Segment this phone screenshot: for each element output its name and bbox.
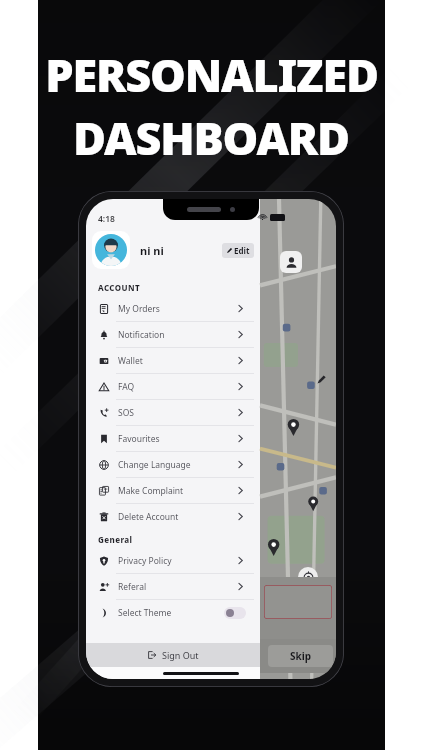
button[interactable]: My Orders: [92, 296, 254, 322]
button[interactable]: Profile marker: [280, 251, 302, 273]
button[interactable]: FAQ: [92, 374, 254, 400]
button[interactable]: Change Language: [92, 452, 254, 478]
button[interactable]: Make Complaint: [92, 478, 254, 504]
button[interactable]: Privacy Policy: [92, 548, 254, 574]
staticText: Change Language: [118, 459, 191, 471]
staticText: Wallet: [118, 355, 143, 367]
button[interactable]: My location: [298, 567, 318, 587]
staticText: Favourites: [118, 433, 160, 445]
staticText: 4:18: [98, 213, 115, 225]
button[interactable]: Sign Out: [86, 643, 260, 667]
staticText: SOS: [118, 407, 134, 419]
staticText: General: [98, 534, 133, 545]
staticText: My Orders: [118, 303, 160, 315]
staticText: PERSONALIZED: [45, 44, 378, 105]
button[interactable]: SOS: [92, 400, 254, 426]
button[interactable]: Favourites: [92, 426, 254, 452]
staticText: ACCOUNT: [98, 282, 140, 293]
button[interactable]: Notification: [92, 322, 254, 348]
staticText: Privacy Policy: [118, 555, 172, 567]
staticText: Edit: [234, 245, 250, 256]
button[interactable]: [92, 231, 130, 269]
staticText: Delete Account: [118, 511, 179, 523]
staticText: Skip: [290, 649, 312, 663]
staticText: Select Theme: [118, 607, 172, 619]
button[interactable]: Referal: [92, 574, 254, 600]
staticText: Referal: [118, 581, 147, 593]
staticText: Make Complaint: [118, 485, 184, 497]
button[interactable]: Wallet: [92, 348, 254, 374]
button[interactable]: Select Theme: [92, 600, 254, 625]
staticText: Notification: [118, 329, 165, 341]
staticText: Sign Out: [162, 649, 199, 661]
button[interactable]: Edit: [222, 243, 254, 258]
staticText: FAQ: [118, 381, 135, 393]
staticText: ni ni: [140, 243, 164, 258]
button[interactable]: Delete Account: [92, 504, 254, 529]
button[interactable]: Skip: [268, 645, 333, 667]
staticText: DASHBOARD: [73, 107, 349, 168]
button[interactable]: Edit location: [312, 370, 330, 388]
